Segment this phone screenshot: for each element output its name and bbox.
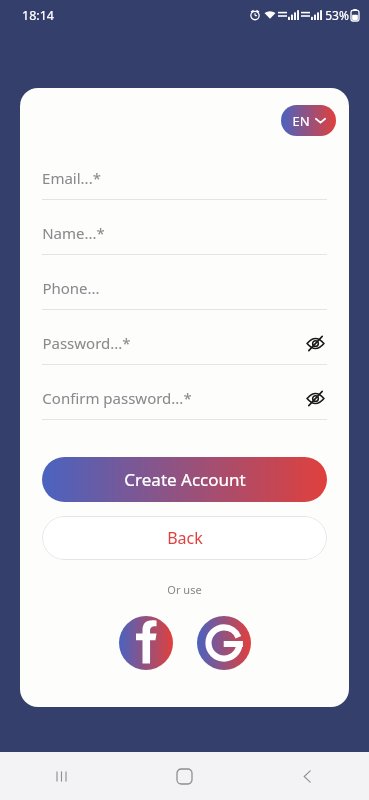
button[interactable]: Sign in with Facebook — [118, 615, 174, 671]
staticText: EN — [292, 112, 310, 130]
staticText: Create Account — [124, 468, 246, 491]
button[interactable]: Toggle password visibility — [303, 331, 327, 355]
button[interactable]: Back — [246, 752, 369, 800]
staticText: Email...* — [42, 168, 101, 188]
staticText: Password...* — [42, 333, 131, 353]
button[interactable]: Back — [42, 516, 327, 560]
button[interactable]: Name...* — [20, 211, 349, 266]
staticText: 18:14 — [22, 7, 54, 24]
staticText: Back — [167, 527, 203, 549]
staticText: Phone... — [42, 278, 100, 298]
button[interactable]: Home — [123, 752, 246, 800]
staticText: Confirm password...* — [42, 388, 192, 408]
button[interactable]: Email...* — [20, 156, 349, 211]
button[interactable]: Create Account — [42, 457, 327, 502]
button[interactable]: EN — [281, 105, 336, 136]
button[interactable]: Toggle password visibility — [303, 386, 327, 410]
staticText: Or use — [167, 582, 202, 597]
button[interactable]: Password...* — [20, 321, 349, 376]
button[interactable]: Phone... — [20, 266, 349, 321]
staticText: 53% — [325, 7, 349, 23]
button[interactable]: Recent apps — [0, 752, 123, 800]
button[interactable]: Confirm password...* — [20, 376, 349, 431]
button[interactable]: Sign in with Google — [196, 615, 252, 671]
staticText: Name...* — [42, 223, 105, 243]
